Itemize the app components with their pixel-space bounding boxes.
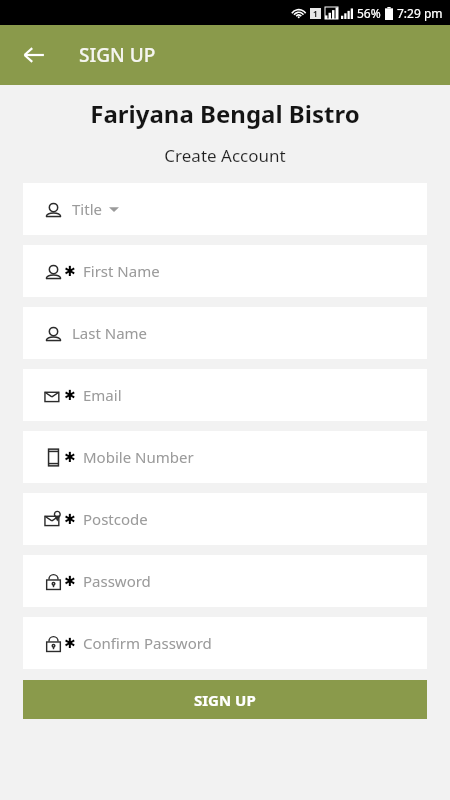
staticText: ✱	[64, 635, 76, 651]
staticText: Confirm Password	[83, 633, 212, 653]
staticText: 1	[313, 8, 318, 19]
button[interactable]: ✱	[23, 617, 427, 669]
button[interactable]: Last Name	[23, 307, 427, 359]
staticText: Last Name	[72, 323, 148, 343]
button[interactable]: ✱	[23, 369, 427, 421]
staticText: 7:29 pm	[397, 5, 443, 21]
staticText: ✱	[64, 511, 76, 527]
staticText: Postcode	[83, 509, 148, 529]
staticText: ✱	[64, 263, 76, 279]
staticText: SIGN UP	[79, 42, 156, 68]
staticText: Password	[83, 571, 151, 591]
staticText: Fariyana Bengal Bistro	[0, 97, 450, 130]
button[interactable]: ✱	[23, 431, 427, 483]
button[interactable]: ✱	[23, 555, 427, 607]
staticText: ✱	[64, 573, 76, 589]
button[interactable]: Title	[23, 183, 427, 235]
staticText: SIGN UP	[194, 690, 256, 710]
button[interactable]: SIGN UP	[23, 680, 427, 719]
button[interactable]: ✱	[23, 493, 427, 545]
staticText: Email	[83, 385, 122, 405]
button[interactable]: Back	[16, 37, 52, 73]
staticText: 56%	[357, 5, 381, 21]
staticText: Create Account	[0, 144, 450, 167]
button[interactable]: ✱	[23, 245, 427, 297]
staticText: Mobile Number	[83, 447, 194, 467]
staticText: ✱	[64, 387, 76, 403]
staticText: First Name	[83, 261, 160, 281]
staticText: ✱	[64, 449, 76, 465]
staticText: Title	[72, 199, 102, 219]
